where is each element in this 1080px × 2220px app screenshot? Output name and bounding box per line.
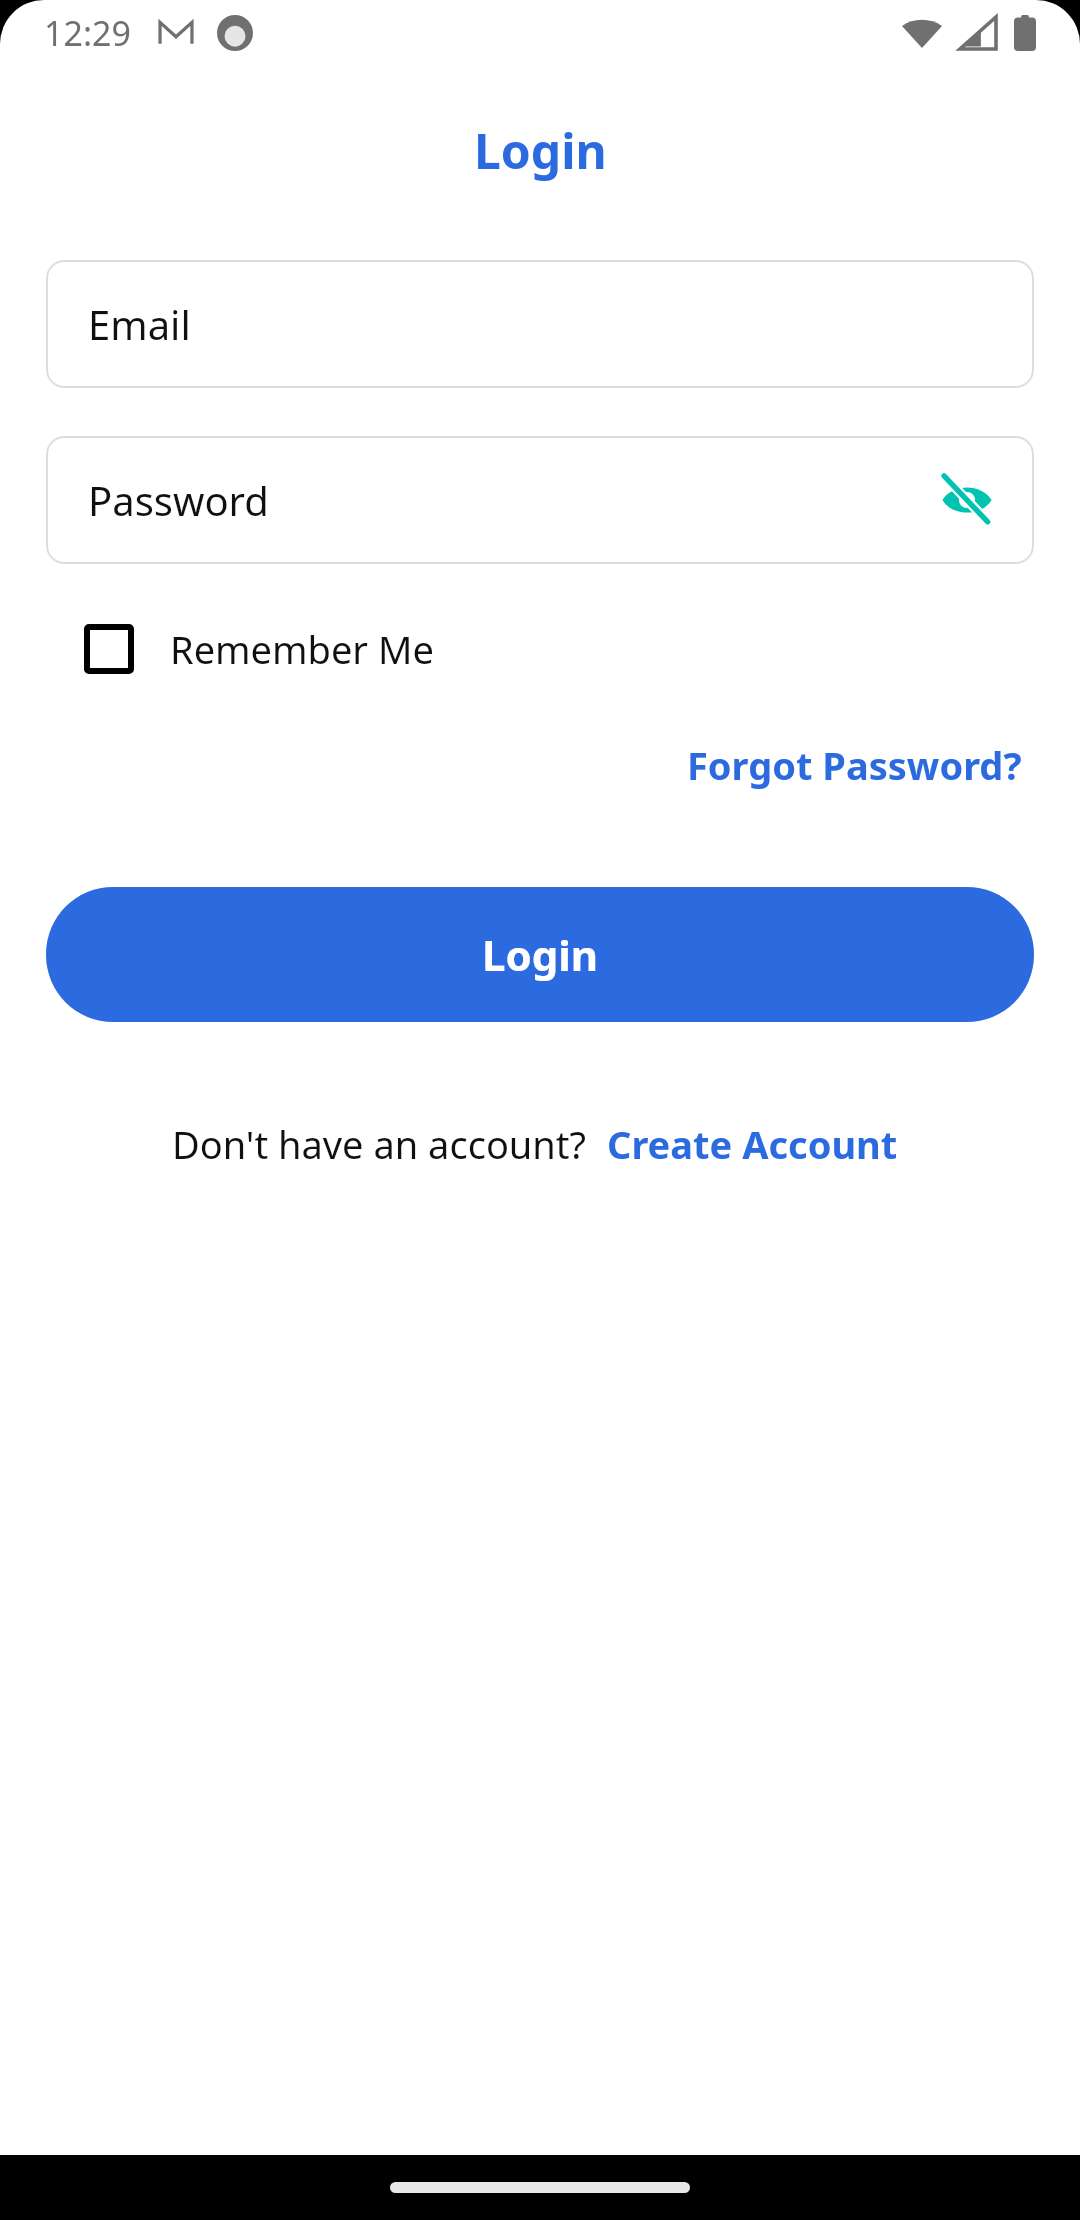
staticText: Don't have an account? bbox=[172, 1118, 587, 1170]
staticText: 12:29 bbox=[44, 10, 131, 56]
button[interactable]: Remember Me bbox=[70, 611, 448, 687]
button[interactable]: Create Account bbox=[597, 1108, 908, 1180]
staticText: Login bbox=[474, 118, 607, 183]
staticText: Email bbox=[88, 297, 191, 351]
button[interactable]: Password bbox=[46, 436, 1034, 564]
staticText: Password bbox=[88, 473, 269, 527]
staticText: Login bbox=[482, 926, 599, 983]
staticText: Forgot Password? bbox=[687, 739, 1022, 791]
staticText: Remember Me bbox=[170, 623, 434, 675]
button[interactable]: Show password bbox=[930, 463, 1004, 537]
button[interactable]: Email bbox=[46, 260, 1034, 388]
staticText: Create Account bbox=[607, 1118, 898, 1170]
button[interactable]: Forgot Password? bbox=[673, 727, 1036, 803]
button[interactable]: Login bbox=[46, 887, 1034, 1022]
